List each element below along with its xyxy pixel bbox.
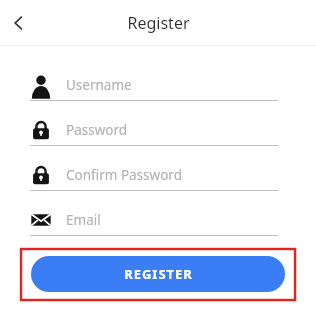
button[interactable]: Confirm Password bbox=[30, 161, 278, 191]
staticText: Email bbox=[66, 211, 101, 229]
staticText: REGISTER bbox=[124, 265, 193, 283]
staticText: Confirm Password bbox=[66, 166, 182, 184]
staticText: Password bbox=[66, 121, 128, 139]
button[interactable]: Username bbox=[30, 71, 278, 101]
button[interactable]: REGISTER bbox=[31, 256, 285, 292]
button[interactable]: Back bbox=[4, 8, 34, 38]
button[interactable]: Password bbox=[30, 116, 278, 146]
staticText: Username bbox=[66, 76, 132, 94]
staticText: Register bbox=[127, 12, 190, 34]
button[interactable]: Email bbox=[30, 206, 278, 236]
